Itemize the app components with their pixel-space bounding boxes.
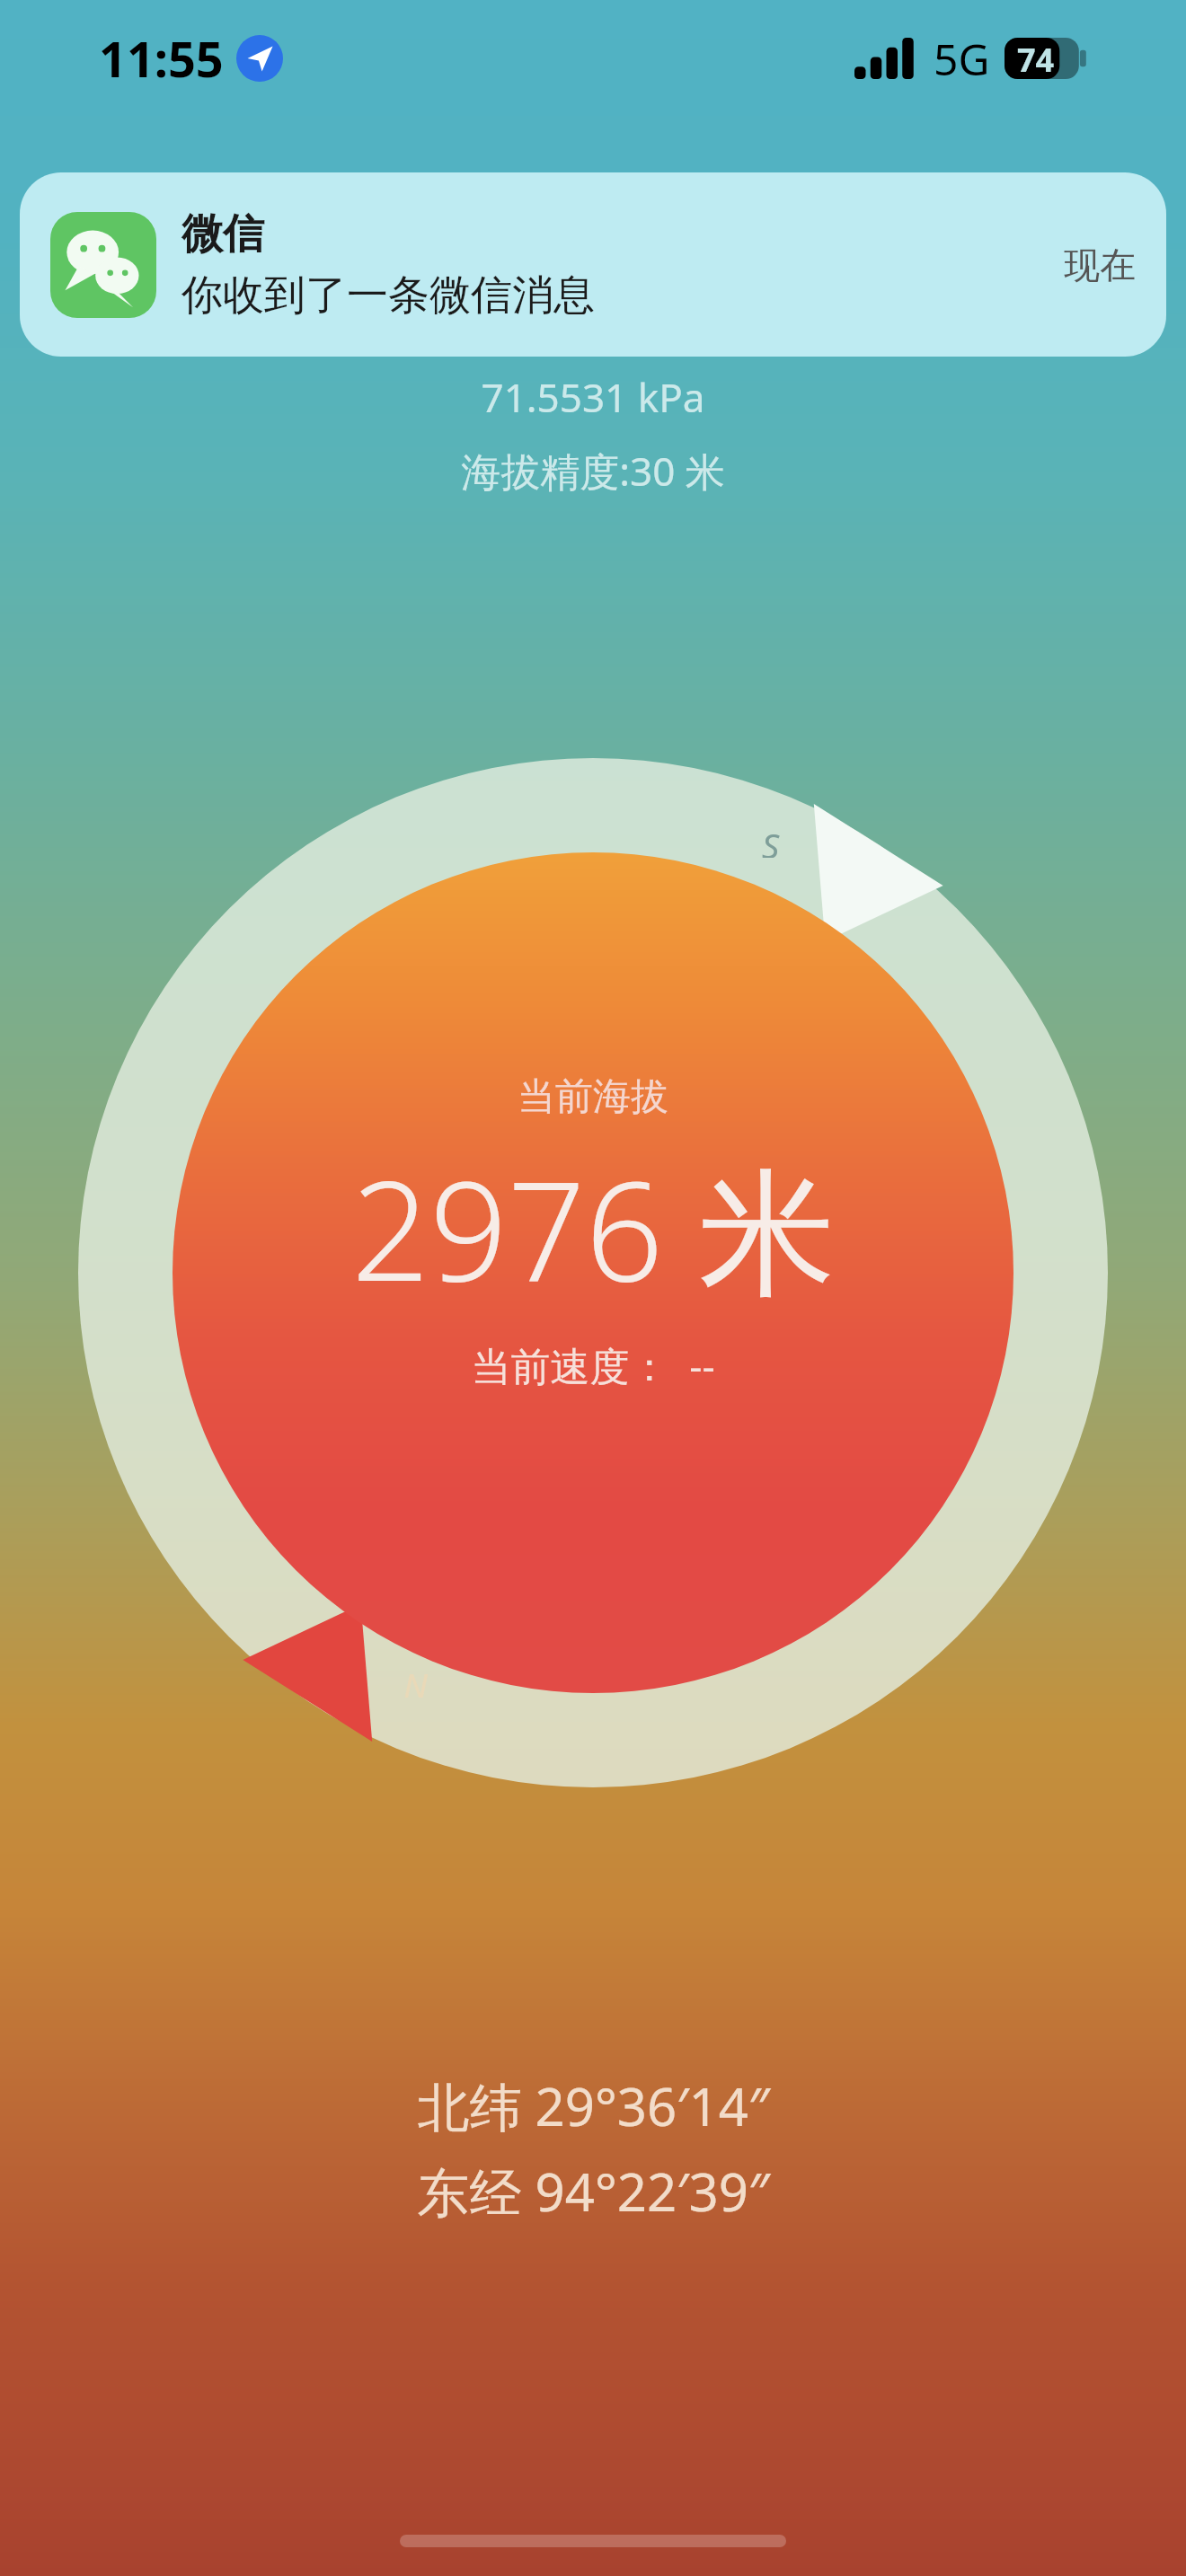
staticText: 当前速度： -- [471,1338,715,1392]
staticText: 5G [934,30,990,88]
staticText: 海拔精度:30 米 [461,444,725,498]
staticText: 当前海拔 [518,1073,668,1121]
button[interactable]: 当前海拔 [0,1073,1186,1392]
staticText: 微信 [181,208,264,260]
staticText: 北纬 29°36′14″ [417,2070,770,2141]
staticText: S [762,822,780,858]
staticText: 11:55 [99,25,224,92]
staticText: 2976 米 [351,1135,836,1322]
other: Location active [236,35,283,82]
staticText: 现在 [1064,243,1136,287]
staticText: N [403,1662,428,1698]
staticText: 74 [1017,38,1055,79]
button[interactable]: 微信 [20,172,1166,357]
staticText: 71.5531 kPa [481,370,705,424]
staticText: 你收到了一条微信消息 [181,269,595,322]
staticText: 东经 94°22′39″ [417,2156,770,2227]
